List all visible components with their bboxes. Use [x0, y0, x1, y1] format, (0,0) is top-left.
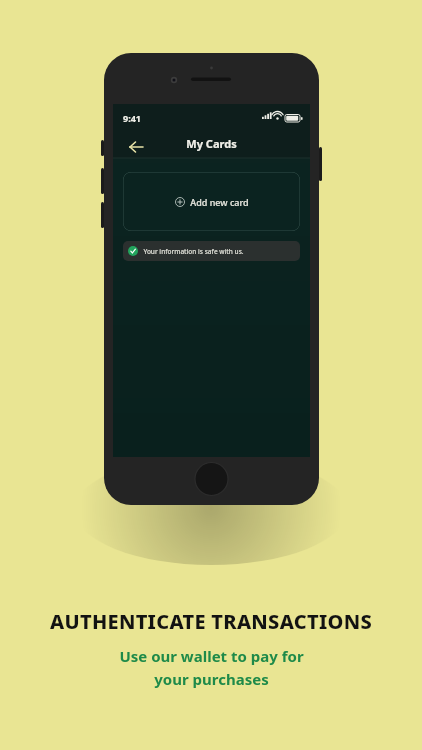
- staticText: Your information is safe with us.: [143, 247, 244, 256]
- button[interactable]: Add new card: [123, 172, 300, 231]
- staticText: Add new card: [190, 196, 249, 208]
- staticText: 9:41: [123, 112, 141, 124]
- button[interactable]: Back: [121, 131, 153, 163]
- staticText: My Cards: [186, 136, 237, 151]
- staticText: AUTHENTICATE TRANSACTIONS: [50, 608, 372, 635]
- staticText: your purchases: [154, 669, 269, 689]
- staticText: Use our wallet to pay for: [119, 646, 304, 666]
- button[interactable]: Your information is safe with us.: [123, 241, 300, 261]
